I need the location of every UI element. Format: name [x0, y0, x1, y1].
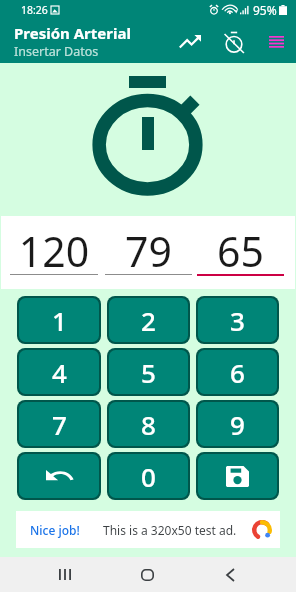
staticText: 18:26: [21, 3, 48, 17]
staticText: 79: [105, 223, 192, 279]
staticText: 7: [52, 407, 67, 442]
button[interactable]: 65: [197, 216, 284, 289]
staticText: This is a 320x50 test ad.: [103, 522, 237, 538]
button[interactable]: 0: [109, 454, 188, 498]
button[interactable]: Recents: [24, 557, 106, 592]
staticText: 1: [52, 303, 67, 338]
staticText: 5: [141, 355, 156, 390]
staticText: 120: [10, 223, 98, 279]
staticText: Presión Arterial: [14, 23, 131, 43]
staticText: 6: [230, 355, 245, 390]
button[interactable]: Statistics: [175, 27, 205, 57]
button[interactable]: 79: [105, 216, 192, 289]
button[interactable]: 7: [19, 402, 99, 446]
button[interactable]: Menu: [263, 29, 289, 55]
staticText: 9: [230, 407, 245, 442]
button[interactable]: Undo: [19, 454, 99, 498]
button[interactable]: Timer off: [219, 27, 249, 57]
staticText: Nice job!: [30, 522, 80, 538]
button[interactable]: 6: [198, 350, 277, 394]
button[interactable]: 120: [10, 216, 98, 289]
button[interactable]: 8: [109, 402, 188, 446]
button[interactable]: Save: [198, 454, 277, 498]
button[interactable]: Back: [189, 557, 272, 592]
button[interactable]: 1: [19, 298, 99, 342]
button[interactable]: Home: [106, 557, 189, 592]
button[interactable]: 9: [198, 402, 277, 446]
staticText: 95%: [253, 2, 277, 18]
button[interactable]: 2: [109, 298, 188, 342]
button[interactable]: 4: [19, 350, 99, 394]
staticText: 0: [141, 459, 156, 494]
button[interactable]: 3: [198, 298, 277, 342]
staticText: 3: [230, 303, 245, 338]
button[interactable]: 5: [109, 350, 188, 394]
staticText: Insertar Datos: [14, 43, 99, 60]
staticText: 4: [52, 355, 67, 390]
button[interactable]: Nice job!: [16, 511, 280, 548]
staticText: 2: [141, 303, 156, 338]
staticText: 65: [197, 223, 284, 279]
staticText: 8: [141, 407, 156, 442]
